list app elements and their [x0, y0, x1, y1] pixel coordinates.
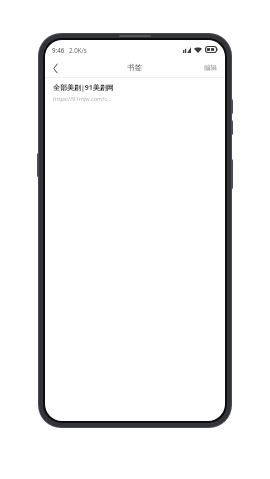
staticText: 书签: [127, 63, 143, 73]
staticText: 编辑: [204, 64, 218, 72]
staticText: 全部美剧|91美剧网: [53, 83, 114, 93]
button[interactable]: 编辑: [197, 61, 225, 75]
staticText: 9:46: [52, 46, 65, 54]
button[interactable]: Back: [45, 59, 65, 77]
staticText: https://91mjw.com/c...: [53, 95, 112, 103]
staticText: 2.0K/s: [69, 46, 87, 54]
button[interactable]: 全部美剧|91美剧网: [45, 78, 225, 109]
